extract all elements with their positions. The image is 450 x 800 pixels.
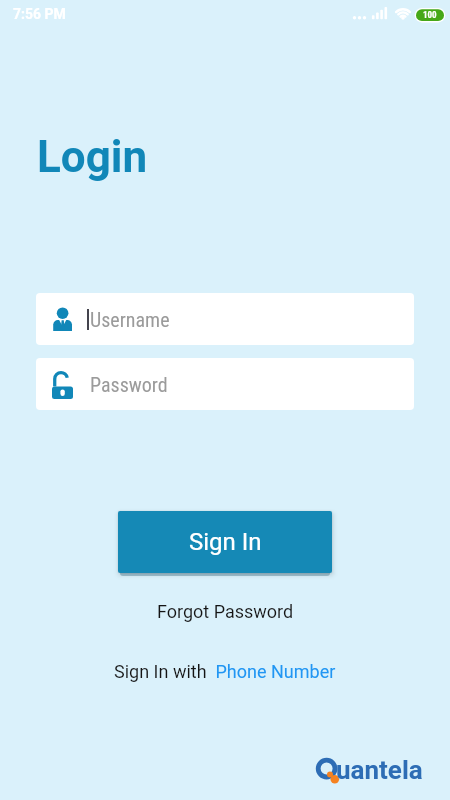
staticText: 7:56 PM [13,6,66,22]
staticText: 100 [423,10,437,21]
staticText: Username [90,308,170,331]
button[interactable]: Password [36,358,414,410]
button[interactable]: Sign In [118,511,332,573]
staticText: uantela [336,755,423,785]
staticText: Password [90,373,168,396]
button[interactable]: Forgot Password [157,601,294,622]
button[interactable]: Username [36,293,414,345]
staticText: Sign In [189,528,262,556]
staticText: Login [37,131,148,183]
button[interactable]: Sign In with Phone Number [114,661,336,682]
